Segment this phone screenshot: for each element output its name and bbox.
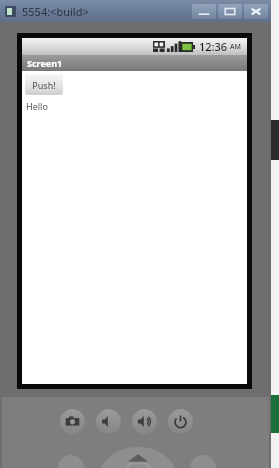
staticText: AM — [230, 42, 242, 52]
staticText: 5554:<build> — [22, 4, 89, 19]
staticText: 12:36 — [199, 39, 228, 54]
button[interactable]: Push! — [25, 74, 63, 95]
button[interactable]: Maximize — [218, 4, 242, 19]
button[interactable]: D-pad up — [96, 447, 180, 468]
button[interactable]: Minimize — [192, 4, 216, 19]
button[interactable]: Volume up — [132, 409, 157, 434]
staticText: Screen1 — [27, 57, 63, 69]
button[interactable]: Camera — [60, 409, 85, 434]
staticText: Push! — [32, 79, 56, 91]
button[interactable]: Power — [168, 409, 193, 434]
staticText: Hello — [26, 100, 48, 112]
button[interactable]: Menu — [58, 455, 84, 468]
button[interactable]: Back — [190, 455, 216, 468]
button[interactable]: Close — [244, 4, 268, 19]
button[interactable]: Volume down — [96, 409, 121, 434]
